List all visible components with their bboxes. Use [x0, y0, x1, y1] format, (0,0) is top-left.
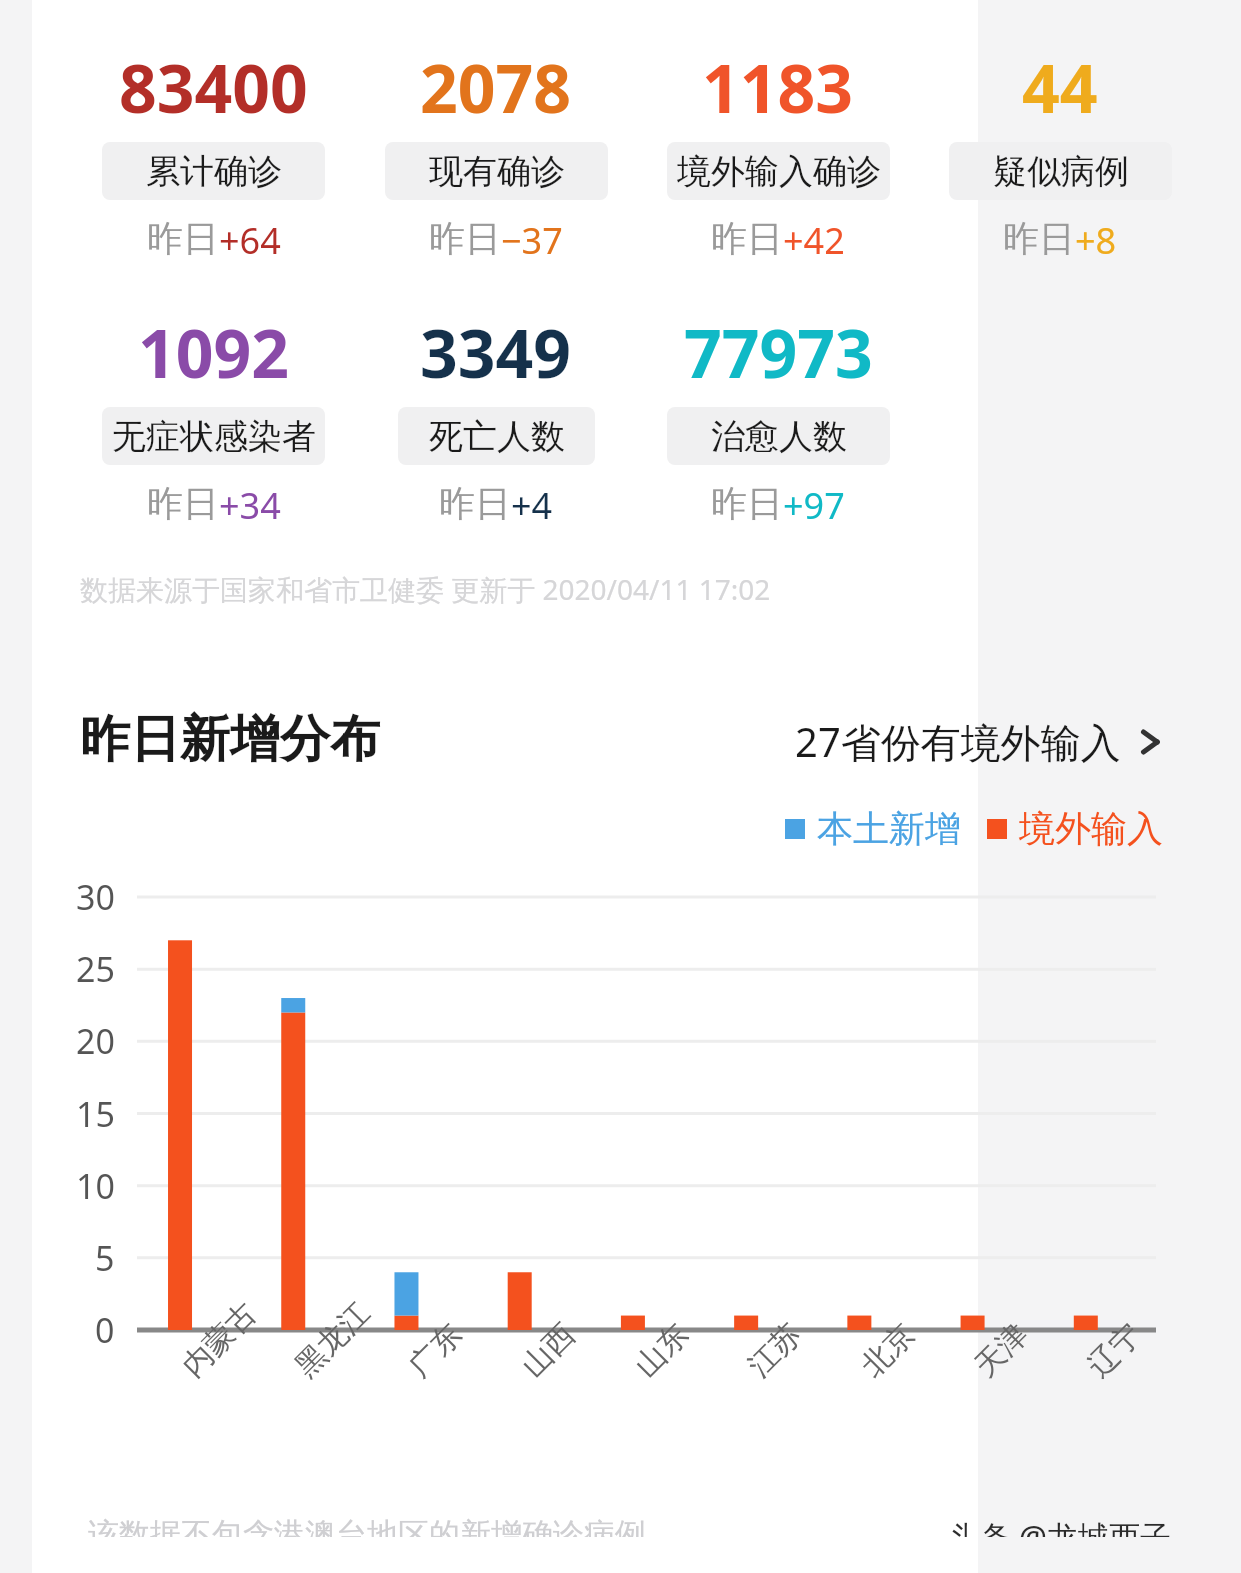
staticText: +34: [219, 481, 281, 530]
staticText: 昨日: [439, 481, 511, 526]
staticText: 数据来源于国家和省市卫健委 更新于 2020/04/11 17:02: [80, 570, 771, 608]
staticText: 77973: [684, 307, 873, 397]
button[interactable]: 1183: [637, 42, 919, 265]
staticText: 境外输入确诊: [677, 150, 881, 193]
staticText: 该数据不包含港澳台地区的新增确诊病例: [88, 1515, 646, 1537]
staticText: 疑似病例: [993, 150, 1129, 193]
staticText: 头条 @龙城西子: [949, 1515, 1171, 1537]
staticText: 现有确诊: [429, 150, 565, 193]
staticText: 累计确诊: [146, 150, 282, 193]
staticText: 昨日: [711, 481, 783, 526]
staticText: 昨日: [429, 216, 501, 261]
button[interactable]: 3349: [355, 307, 637, 530]
button[interactable]: 77973: [637, 307, 919, 530]
button[interactable]: 1092: [72, 307, 355, 530]
staticText: +97: [783, 481, 845, 530]
staticText: 昨日: [147, 481, 219, 526]
staticText: +4: [511, 481, 553, 530]
staticText: +8: [1075, 216, 1117, 265]
staticText: 本土新增: [817, 806, 961, 851]
staticText: 昨日: [147, 216, 219, 261]
button[interactable]: 44: [919, 42, 1201, 265]
staticText: 治愈人数: [711, 415, 847, 458]
staticText: 2078: [420, 42, 572, 132]
staticText: 昨日: [711, 216, 783, 261]
button[interactable]: 83400: [72, 42, 355, 265]
staticText: −37: [501, 216, 563, 265]
button[interactable]: 27省份有境外输入: [795, 714, 1163, 769]
staticText: 昨日: [1003, 216, 1075, 261]
button[interactable]: 2078: [355, 42, 637, 265]
staticText: 1092: [138, 307, 290, 397]
staticText: 3349: [420, 307, 572, 397]
staticText: 83400: [119, 42, 308, 132]
staticText: +64: [219, 216, 281, 265]
staticText: 27省份有境外输入: [795, 714, 1121, 769]
staticText: 死亡人数: [429, 415, 565, 458]
staticText: 1183: [702, 42, 854, 132]
staticText: 境外输入: [1019, 806, 1163, 851]
staticText: 44: [1022, 42, 1098, 132]
staticText: 无症状感染者: [112, 415, 316, 458]
staticText: +42: [783, 216, 845, 265]
staticText: 昨日新增分布: [80, 708, 380, 771]
